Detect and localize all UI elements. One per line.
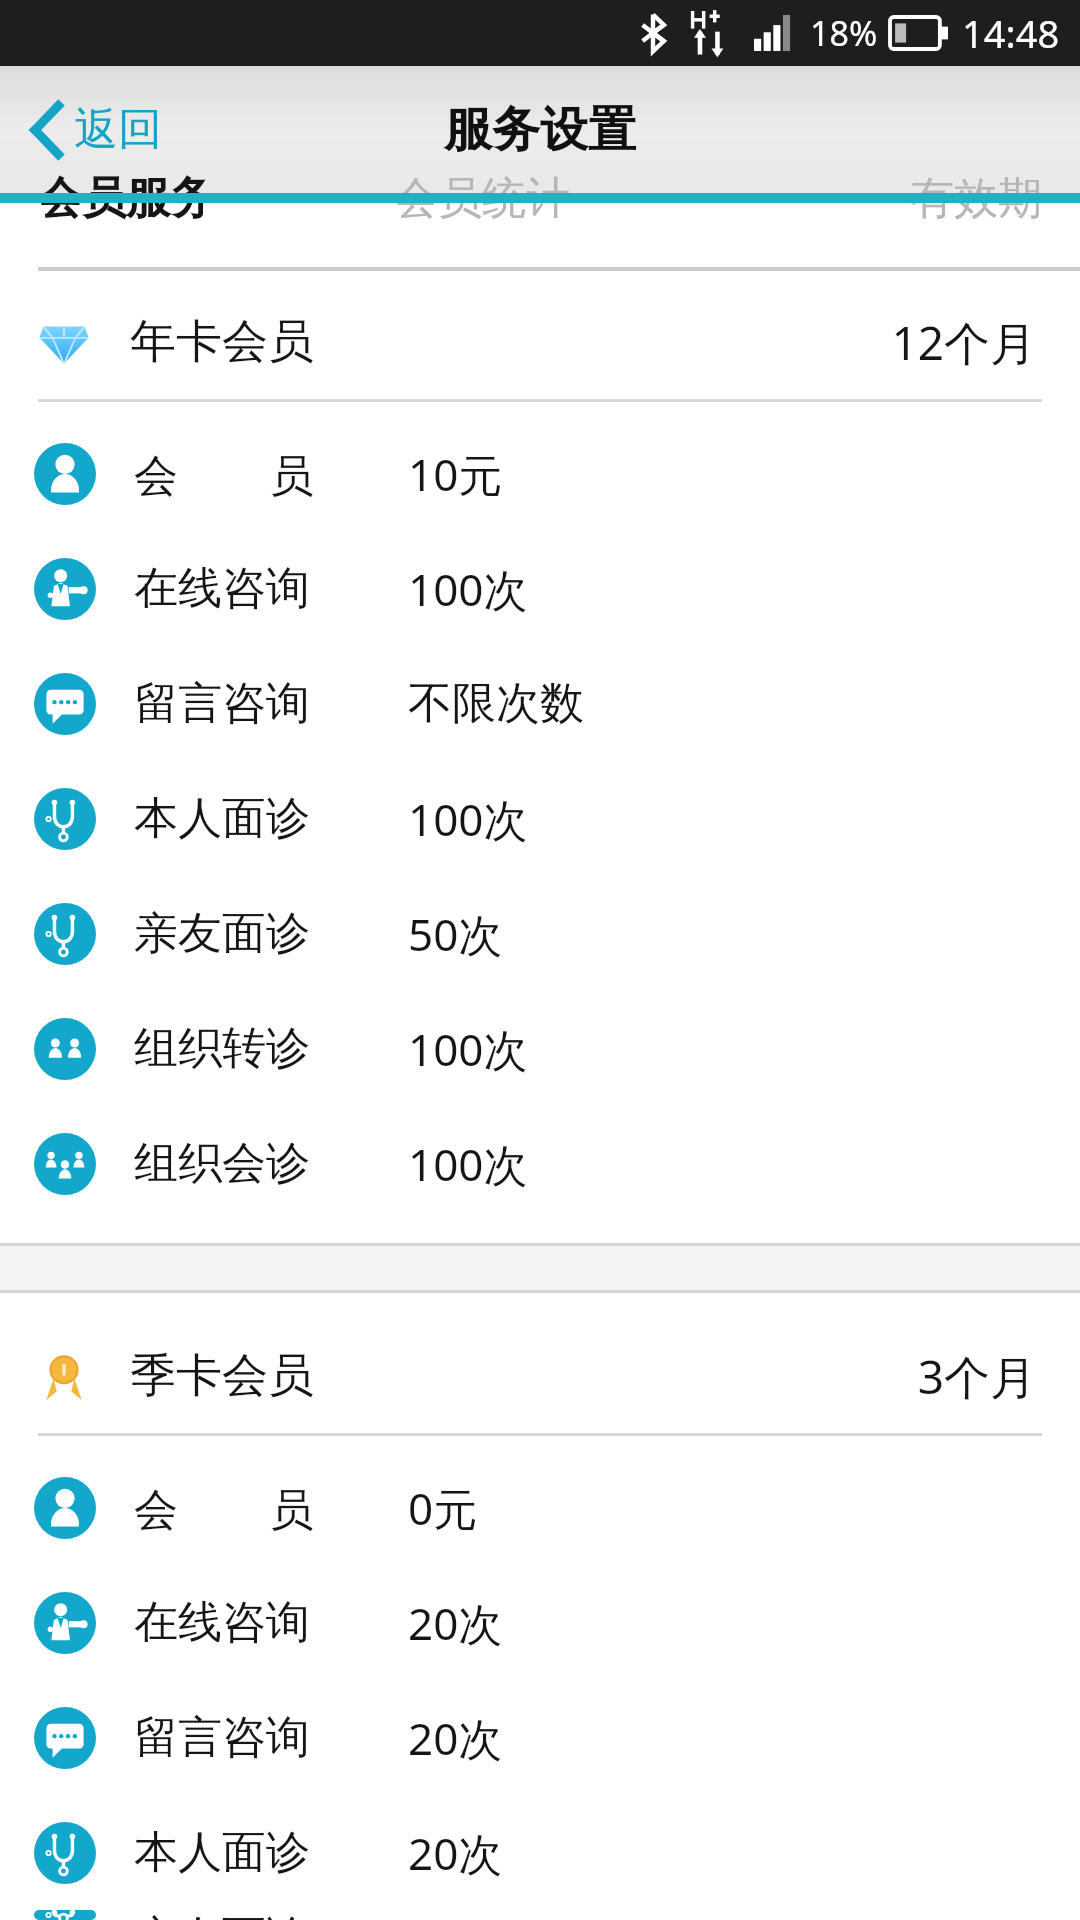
staticText: 组织会诊 [134,1136,384,1191]
staticText: 亲友面诊 [134,1910,384,1920]
button[interactable]: 留言咨询 [0,646,1080,761]
button[interactable]: 年卡会员 [0,299,1080,385]
staticText: 组织转诊 [134,1021,384,1076]
staticText: 100次 [408,789,528,849]
staticText: 18% [810,10,878,56]
staticText: 100次 [408,1134,528,1194]
button[interactable]: 组织会诊 [0,1106,1080,1221]
button[interactable]: 返回 [22,92,172,167]
button[interactable]: 亲友面诊 [0,1910,1080,1920]
staticText: 会 员 [134,444,384,504]
button[interactable]: 亲友面诊 [0,876,1080,991]
button[interactable]: 留言咨询 [0,1680,1080,1795]
button[interactable]: 本人面诊 [0,1795,1080,1910]
staticText: 在线咨询 [134,561,384,616]
staticText: 留言咨询 [134,1710,384,1765]
button[interactable]: 会 员 [0,416,1080,531]
staticText: 20次 [408,1823,503,1883]
staticText: 10元 [408,444,503,504]
button[interactable]: 会 员 [0,1450,1080,1565]
button[interactable]: 季卡会员 [0,1333,1080,1419]
staticText: 本人面诊 [134,791,384,846]
staticText: 100次 [408,559,528,619]
staticText: 服务设置 [444,100,636,160]
staticText: 返回 [74,102,162,157]
staticText: 14:48 [962,7,1060,59]
staticText: 年卡会员 [130,313,314,371]
staticText: 20次 [408,1593,503,1653]
staticText: 亲友面诊 [134,906,384,961]
staticText: 季卡会员 [130,1347,314,1405]
staticText: 会 员 [134,1478,384,1538]
button[interactable]: 组织转诊 [0,991,1080,1106]
staticText: 0元 [408,1478,478,1538]
staticText: 50次 [408,904,503,964]
staticText: 不限次数 [408,676,584,731]
staticText: 有效期 [910,171,1042,226]
button[interactable]: 在线咨询 [0,531,1080,646]
staticText: 会员统计 [394,171,570,226]
staticText: 12个月 [891,311,1036,374]
staticText: 3个月 [917,1345,1036,1408]
button[interactable]: 在线咨询 [0,1565,1080,1680]
staticText: 本人面诊 [134,1825,384,1880]
staticText: 会员服务 [38,171,214,226]
staticText: 留言咨询 [134,676,384,731]
button[interactable]: 本人面诊 [0,761,1080,876]
staticText: 在线咨询 [134,1595,384,1650]
staticText: 20次 [408,1708,503,1768]
staticText: 100次 [408,1019,528,1079]
